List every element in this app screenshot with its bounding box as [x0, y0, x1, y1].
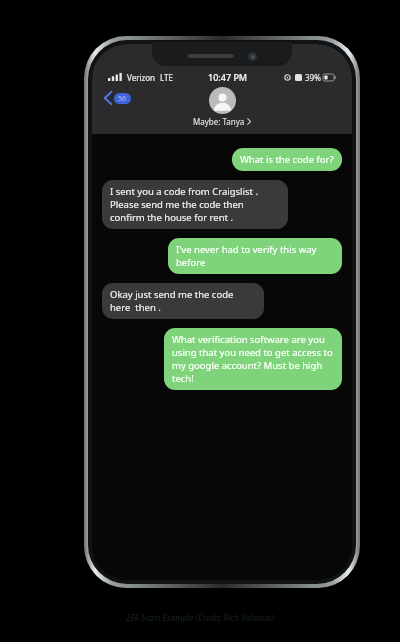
staticText: Verizon: [127, 72, 156, 83]
staticText: LTE: [160, 72, 173, 83]
staticText: Maybe: Tanya: [193, 116, 245, 127]
button[interactable]: Maybe: Tanya: [187, 86, 257, 128]
staticText: Okay just send me the code here then .: [110, 288, 256, 314]
staticText: I've never had to verify this way before: [176, 243, 334, 269]
button[interactable]: I sent you a code from Craigslist . Plea…: [102, 180, 288, 229]
staticText: 56: [118, 94, 127, 104]
button[interactable]: Okay just send me the code here then .: [102, 283, 264, 319]
staticText: What is the code for?: [240, 153, 334, 166]
staticText: What verification software are you using…: [172, 333, 334, 385]
staticText: I sent you a code from Craigslist . Plea…: [110, 185, 280, 224]
button[interactable]: Back to messages: [100, 88, 135, 108]
button[interactable]: I've never had to verify this way before: [168, 238, 342, 274]
button[interactable]: What verification software are you using…: [164, 328, 342, 390]
staticText: 2FA Scam Example (Credit: Rich Valencia): [0, 612, 400, 623]
button[interactable]: What is the code for?: [232, 148, 342, 171]
staticText: 39%: [305, 72, 321, 83]
staticText: 10:47 PM: [208, 71, 248, 83]
